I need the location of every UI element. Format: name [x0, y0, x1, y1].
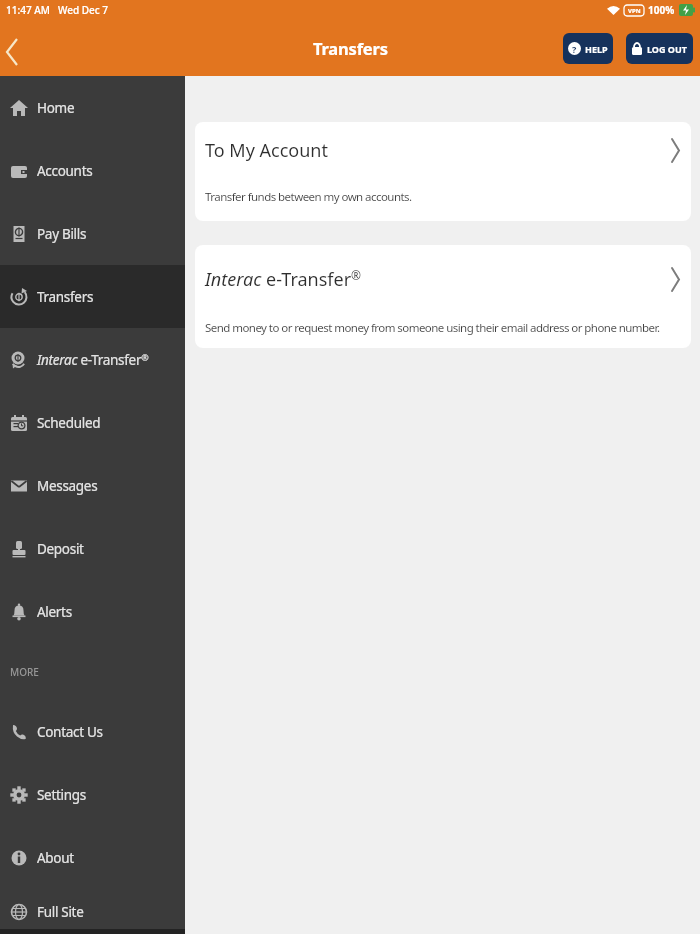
- staticText: VPN: [628, 7, 641, 15]
- staticText: Settings: [37, 786, 86, 804]
- staticText: Wed Dec 7: [58, 3, 109, 17]
- staticText: Messages: [37, 477, 98, 495]
- button[interactable]: Settings: [0, 763, 185, 826]
- staticText: Transfers: [37, 288, 94, 306]
- staticText: Transfer funds between my own accounts.: [205, 189, 412, 205]
- staticText: Interac e-Transfer®: [37, 351, 149, 369]
- staticText: Alerts: [37, 603, 72, 621]
- staticText: Accounts: [37, 162, 93, 180]
- staticText: Send money to or request money from some…: [205, 320, 660, 336]
- button[interactable]: About: [0, 826, 185, 889]
- button[interactable]: Interac e-Transfer®: [0, 328, 185, 391]
- button[interactable]: Accounts: [0, 139, 185, 202]
- staticText: Transfers: [313, 37, 388, 59]
- button[interactable]: Transfers: [0, 265, 185, 328]
- staticText: To My Account: [205, 138, 328, 163]
- staticText: MORE: [10, 665, 39, 679]
- button[interactable]: LOG OUT: [626, 33, 693, 64]
- staticText: Scheduled: [37, 414, 101, 432]
- button[interactable]: Scheduled: [0, 391, 185, 454]
- staticText: Pay Bills: [37, 225, 87, 243]
- button[interactable]: Messages: [0, 454, 185, 517]
- staticText: Contact Us: [37, 723, 103, 741]
- staticText: Full Site: [37, 903, 84, 921]
- staticText: LOG OUT: [647, 43, 687, 55]
- button[interactable]: ?: [563, 33, 613, 64]
- staticText: Deposit: [37, 540, 84, 558]
- button[interactable]: Home: [0, 76, 185, 139]
- staticText: Home: [37, 99, 75, 117]
- staticText: About: [37, 849, 74, 867]
- button[interactable]: Full Site: [0, 889, 185, 934]
- staticText: Interac e-Transfer®: [205, 267, 362, 292]
- staticText: ?: [572, 43, 577, 55]
- button[interactable]: Deposit: [0, 517, 185, 580]
- button[interactable]: [0, 32, 22, 72]
- staticText: 11:47 AM: [6, 3, 50, 17]
- button[interactable]: Contact Us: [0, 700, 185, 763]
- staticText: HELP: [585, 43, 608, 55]
- button[interactable]: Interac e-Transfer®: [195, 245, 691, 348]
- button[interactable]: Pay Bills: [0, 202, 185, 265]
- button[interactable]: To My Account: [195, 122, 691, 221]
- button[interactable]: Alerts: [0, 580, 185, 643]
- staticText: 100%: [648, 3, 675, 17]
